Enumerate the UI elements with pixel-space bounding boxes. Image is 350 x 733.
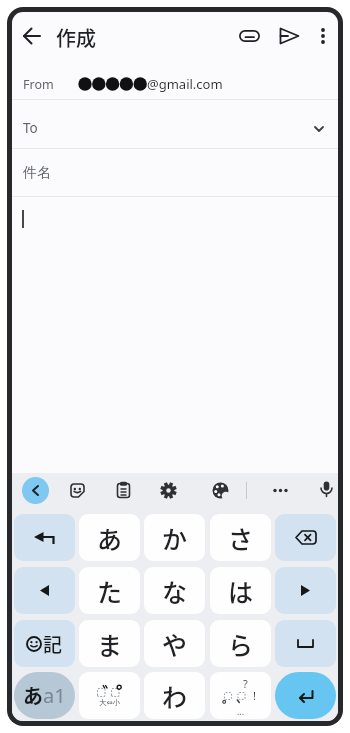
button[interactable]: あ xyxy=(79,514,140,561)
staticText: ! xyxy=(253,688,256,703)
staticText: 件名 xyxy=(23,164,51,182)
button[interactable]: さ xyxy=(210,514,271,561)
button[interactable]: た xyxy=(79,567,140,614)
button[interactable] xyxy=(275,672,336,719)
staticText: あ xyxy=(97,520,123,556)
staticText: @gmail.com xyxy=(147,75,223,93)
button[interactable]: ら xyxy=(210,620,271,667)
staticText: 作成 xyxy=(56,23,96,52)
button[interactable] xyxy=(310,23,336,49)
staticText: … xyxy=(237,705,245,717)
button[interactable] xyxy=(22,477,49,504)
button[interactable] xyxy=(14,567,75,614)
button[interactable] xyxy=(114,481,133,500)
staticText: や xyxy=(162,626,188,662)
button[interactable]: 記 xyxy=(14,620,75,667)
staticText: 記 xyxy=(43,630,63,658)
button[interactable]: ま xyxy=(79,620,140,667)
button[interactable] xyxy=(317,480,336,499)
staticText: あ xyxy=(23,681,43,710)
button[interactable] xyxy=(275,514,336,561)
staticText: た xyxy=(97,573,123,609)
button[interactable] xyxy=(211,481,230,500)
staticText: ? xyxy=(243,676,248,691)
staticText: ら xyxy=(228,626,254,662)
button[interactable]: か xyxy=(144,514,205,561)
button[interactable]: ? xyxy=(210,672,271,719)
button[interactable] xyxy=(271,481,290,500)
staticText: a1 xyxy=(43,682,66,709)
button[interactable]: To xyxy=(12,100,338,148)
staticText: わ xyxy=(162,678,188,714)
button[interactable]: な xyxy=(144,567,205,614)
button[interactable] xyxy=(18,22,46,50)
button[interactable]: や xyxy=(144,620,205,667)
staticText: さ xyxy=(228,520,254,556)
button[interactable] xyxy=(14,514,75,561)
staticText: ま xyxy=(97,626,123,662)
staticText: な xyxy=(162,573,188,609)
button[interactable] xyxy=(275,620,336,667)
button[interactable]: は xyxy=(210,567,271,614)
button[interactable] xyxy=(275,567,336,614)
button[interactable] xyxy=(236,23,262,49)
button[interactable]: 件名 xyxy=(12,149,338,196)
button[interactable]: あ xyxy=(14,672,75,719)
staticText: To xyxy=(23,119,38,137)
staticText: は xyxy=(228,573,254,609)
button[interactable] xyxy=(68,481,87,500)
staticText: 大⇔小 xyxy=(99,698,121,707)
button[interactable] xyxy=(276,23,302,49)
staticText: From xyxy=(23,76,54,93)
button[interactable]: わ xyxy=(144,672,205,719)
button[interactable]: 大⇔小 xyxy=(79,672,140,719)
staticText: か xyxy=(162,520,188,556)
button[interactable] xyxy=(159,481,178,500)
button[interactable]: From xyxy=(12,66,338,99)
